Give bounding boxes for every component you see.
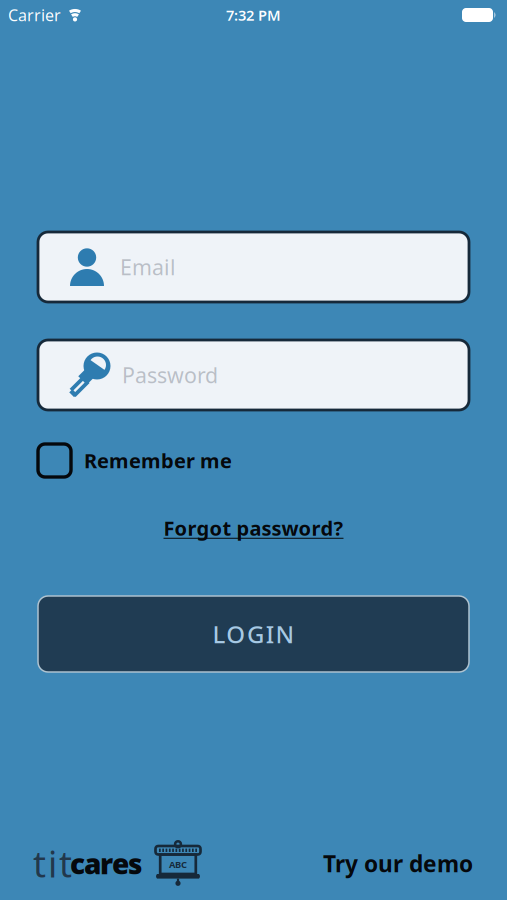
- staticText: LOGIN: [212, 618, 295, 650]
- staticText: tit: [33, 840, 72, 887]
- button[interactable]: Forgot password?: [163, 513, 343, 543]
- button[interactable]: Try our demo: [323, 848, 473, 878]
- staticText: Try our demo: [323, 848, 473, 878]
- staticText: Carrier: [8, 4, 61, 26]
- button[interactable]: Password: [38, 340, 469, 410]
- button[interactable]: Remember me: [0, 444, 507, 477]
- staticText: Remember me: [84, 447, 232, 474]
- button[interactable]: Email: [38, 232, 469, 302]
- staticText: Password: [122, 361, 218, 389]
- button[interactable]: LOGIN: [38, 596, 469, 672]
- staticText: Email: [120, 253, 176, 281]
- staticText: 7:32 PM: [226, 5, 281, 25]
- staticText: Forgot password?: [163, 515, 343, 541]
- staticText: ABC: [169, 858, 187, 870]
- staticText: cares: [70, 845, 142, 882]
